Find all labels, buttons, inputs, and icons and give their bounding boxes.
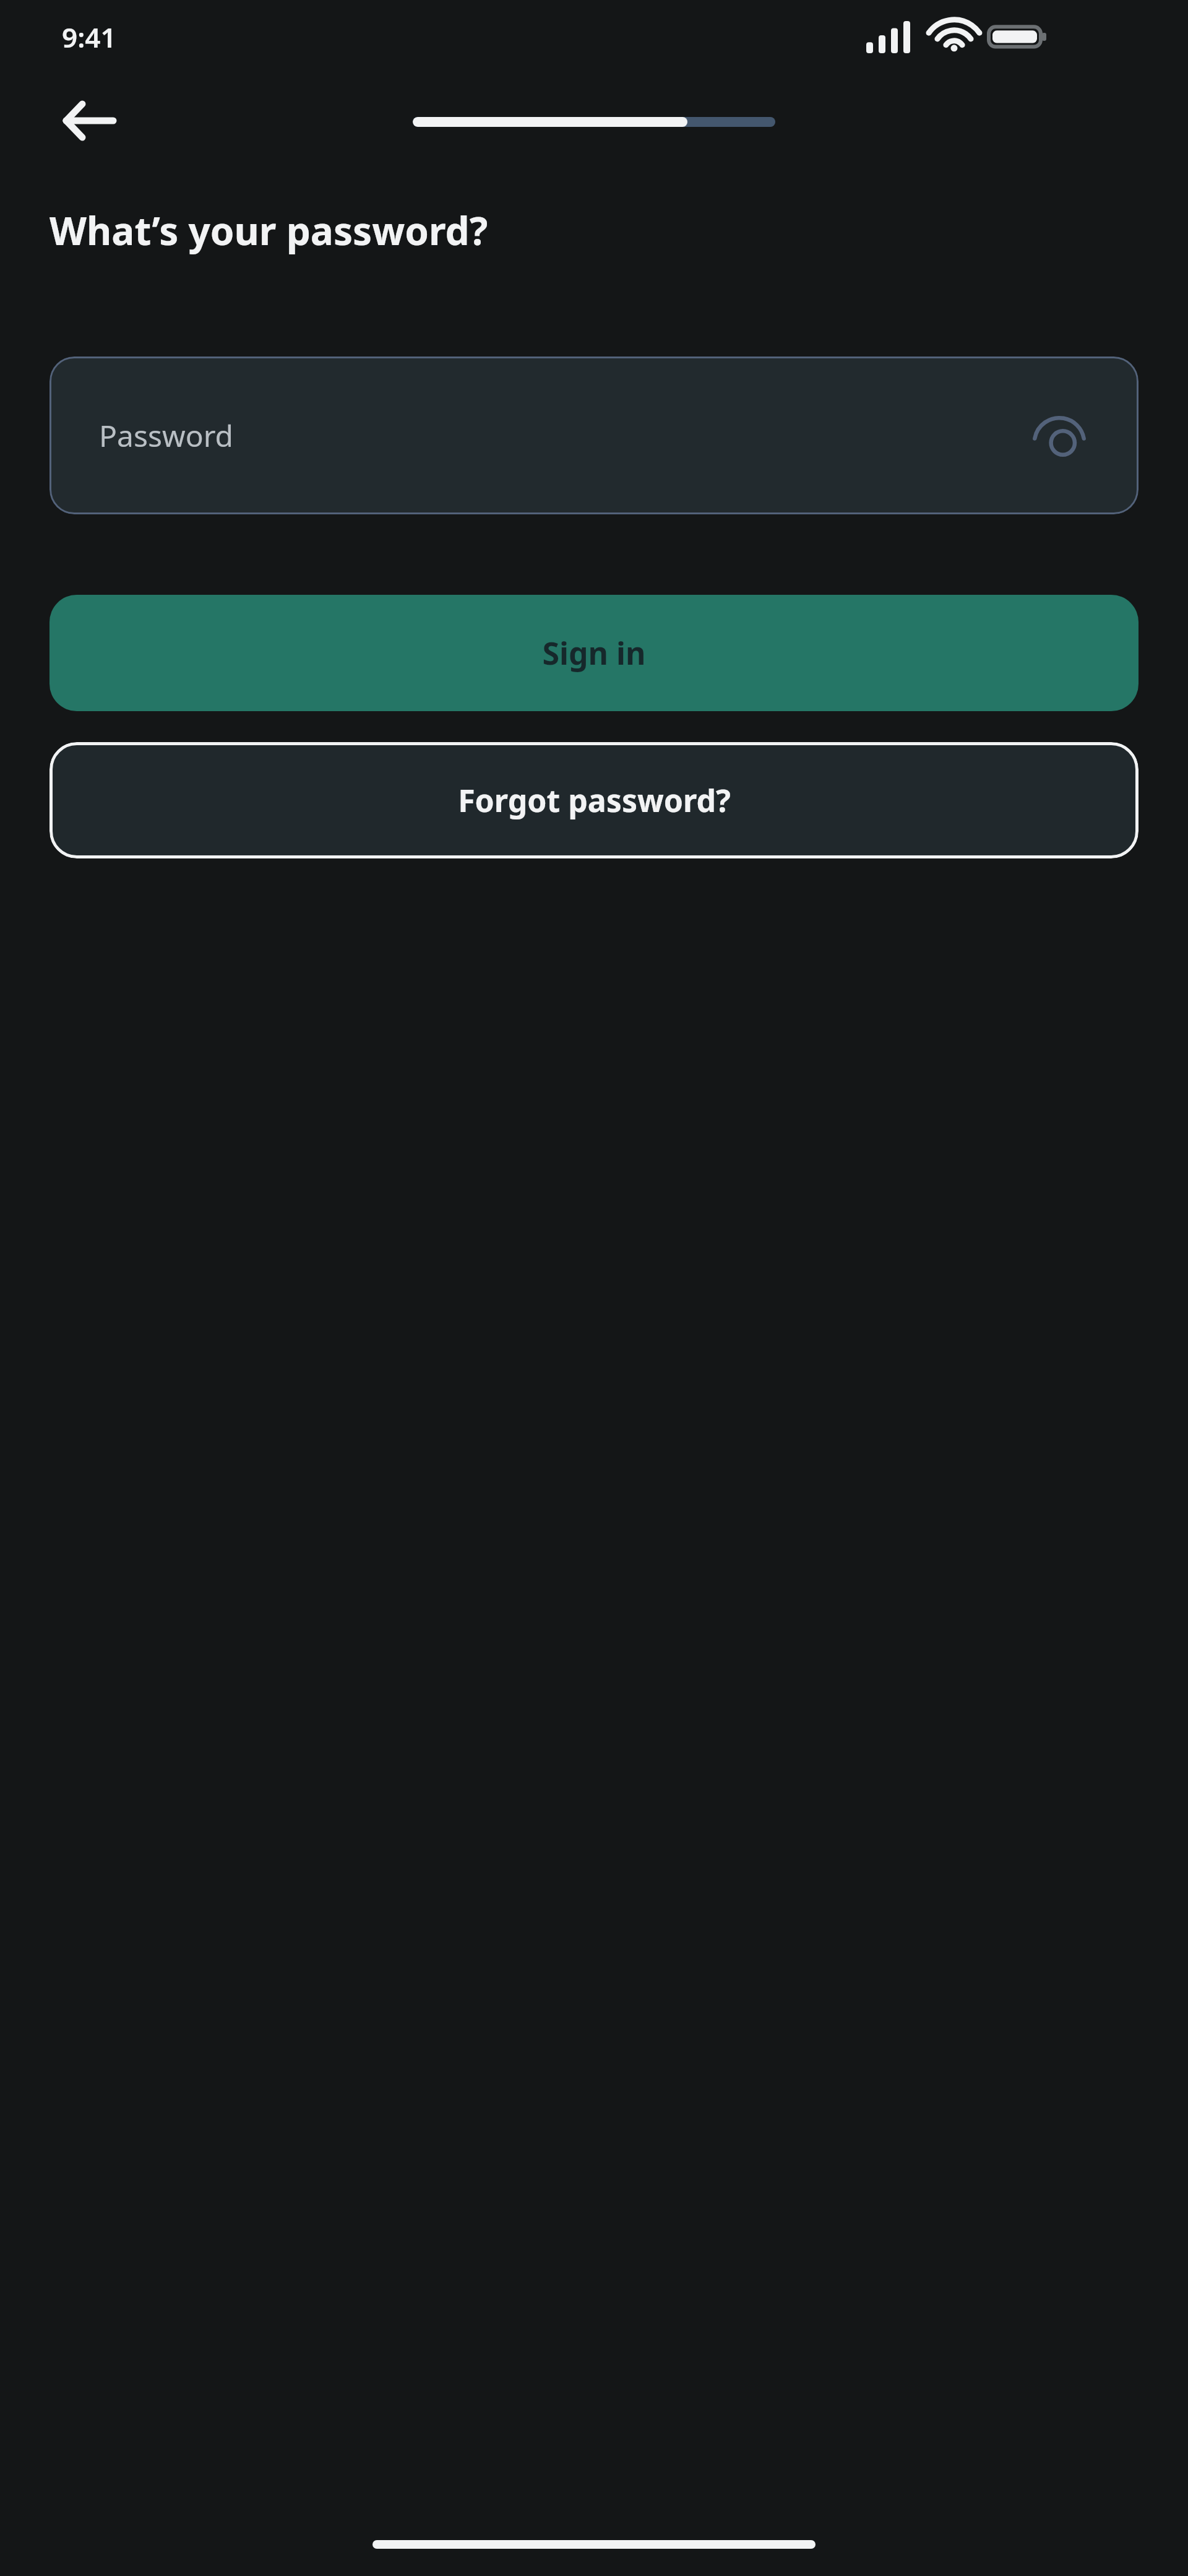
staticText: What’s your password? [49, 204, 488, 256]
staticText: Password [99, 415, 1022, 456]
button[interactable]: Back [48, 80, 129, 161]
staticText: Forgot password? [458, 779, 731, 821]
staticText: Sign in [542, 632, 646, 674]
button[interactable]: Forgot password? [49, 742, 1138, 858]
button[interactable]: Password [49, 357, 1138, 514]
button[interactable]: Sign in [49, 595, 1138, 711]
staticText: 9:41 [62, 19, 116, 56]
button[interactable]: Show password [1022, 399, 1096, 473]
